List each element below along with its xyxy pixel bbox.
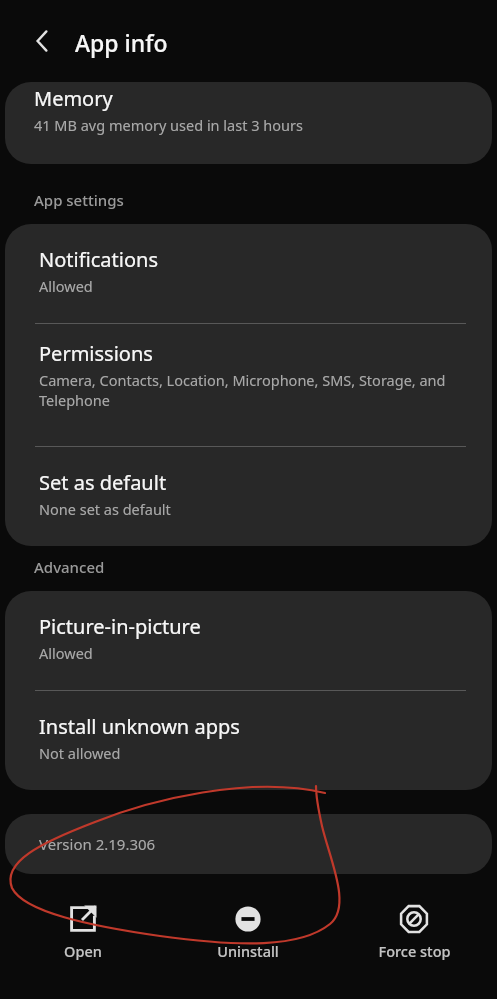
- button[interactable]: Uninstall app: [165, 898, 331, 967]
- staticText: Memory: [34, 85, 113, 112]
- staticText: App settings: [34, 190, 124, 210]
- button[interactable]: Open app: [0, 898, 165, 967]
- staticText: Version 2.19.306: [39, 834, 156, 854]
- staticText: Force stop: [378, 941, 451, 961]
- button[interactable]: Picture-in-picture: [5, 591, 492, 690]
- staticText: Not allowed: [39, 743, 121, 763]
- staticText: Picture-in-picture: [39, 613, 201, 640]
- staticText: Camera, Contacts, Location, Microphone, …: [39, 370, 468, 411]
- staticText: App info: [75, 27, 168, 58]
- button[interactable]: Force stop app: [331, 898, 497, 967]
- button[interactable]: Install unknown apps: [5, 691, 492, 790]
- button[interactable]: Back: [24, 21, 64, 61]
- staticText: Set as default: [39, 469, 167, 496]
- staticText: Allowed: [39, 276, 93, 296]
- staticText: Install unknown apps: [39, 713, 240, 740]
- staticText: Uninstall: [217, 941, 279, 961]
- button[interactable]: Memory: [5, 82, 492, 164]
- staticText: Allowed: [39, 643, 93, 663]
- staticText: 41 MB avg memory used in last 3 hours: [34, 115, 303, 135]
- button[interactable]: Permissions: [5, 324, 492, 446]
- staticText: Permissions: [39, 340, 153, 367]
- button[interactable]: Set as default: [5, 447, 492, 546]
- staticText: Advanced: [34, 557, 105, 577]
- staticText: Open: [64, 941, 102, 961]
- staticText: Notifications: [39, 246, 158, 273]
- staticText: None set as default: [39, 499, 171, 519]
- button[interactable]: Notifications: [5, 224, 492, 323]
